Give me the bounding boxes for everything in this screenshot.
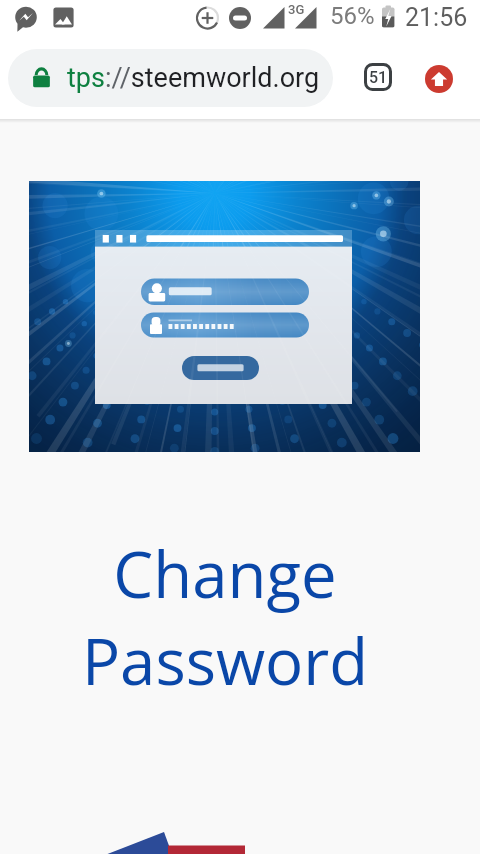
staticText: 3G: [288, 2, 305, 17]
button[interactable]: Tabs: [358, 57, 398, 97]
staticText: 51: [369, 68, 388, 87]
staticText: Change Password: [0, 530, 465, 704]
button[interactable]: tps://steemworld.org: [8, 49, 333, 107]
staticText: 56%: [330, 2, 375, 30]
staticText: tps://steemworld.org: [67, 62, 320, 94]
button[interactable]: Update Chrome: [418, 58, 459, 99]
staticText: 21:56: [405, 3, 468, 32]
